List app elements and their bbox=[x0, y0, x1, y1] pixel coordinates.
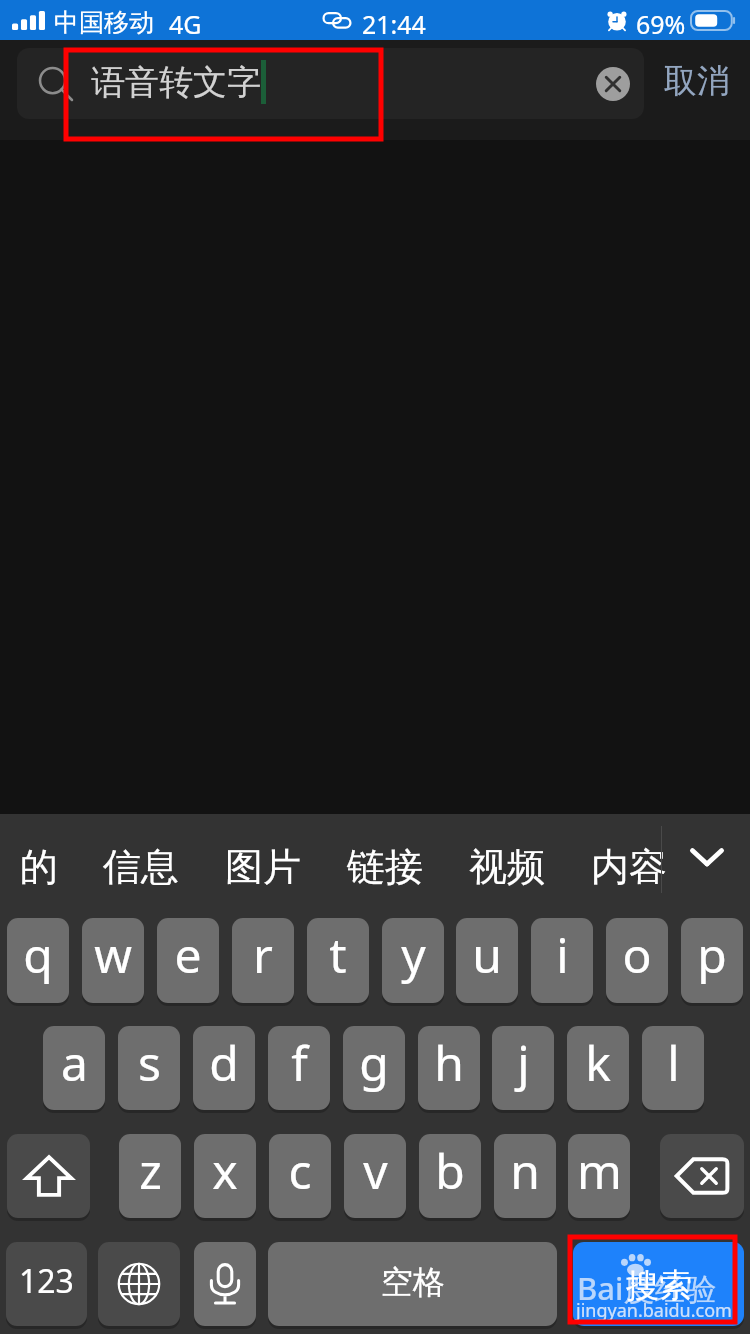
staticText: a bbox=[61, 1030, 88, 1095]
staticText: 语音转文字 bbox=[91, 61, 261, 104]
button[interactable]: l bbox=[642, 1026, 704, 1110]
button[interactable]: Shift bbox=[7, 1134, 90, 1218]
staticText: o bbox=[622, 922, 652, 987]
button[interactable]: c bbox=[269, 1134, 331, 1218]
button[interactable]: 的 bbox=[6, 825, 72, 909]
button[interactable]: 内容 bbox=[577, 825, 681, 909]
staticText: c bbox=[288, 1138, 312, 1203]
staticText: Bai度经验 bbox=[577, 1267, 717, 1309]
staticText: q bbox=[23, 922, 53, 987]
staticText: 信息 bbox=[103, 843, 179, 891]
staticText: i bbox=[556, 922, 569, 987]
button[interactable]: m bbox=[568, 1134, 630, 1218]
button[interactable]: f bbox=[268, 1026, 330, 1110]
button[interactable]: Hide keyboard bbox=[675, 825, 739, 889]
staticText: m bbox=[577, 1138, 622, 1203]
staticText: w bbox=[94, 922, 132, 987]
staticText: r bbox=[253, 922, 273, 987]
staticText: d bbox=[209, 1030, 239, 1095]
staticText: 取消 bbox=[664, 60, 730, 102]
button[interactable]: d bbox=[193, 1026, 255, 1110]
staticText: l bbox=[667, 1030, 680, 1095]
button[interactable]: p bbox=[681, 918, 743, 1003]
staticText: 图片 bbox=[225, 843, 301, 891]
button[interactable]: e bbox=[157, 918, 219, 1003]
button[interactable]: j bbox=[492, 1026, 554, 1110]
staticText: x bbox=[212, 1138, 238, 1203]
staticText: n bbox=[510, 1138, 540, 1203]
button[interactable]: b bbox=[419, 1134, 481, 1218]
staticText: z bbox=[139, 1138, 162, 1203]
staticText: 搜索 bbox=[626, 1265, 692, 1307]
button[interactable]: Backspace bbox=[660, 1134, 744, 1218]
staticText: 21:44 bbox=[362, 7, 426, 41]
staticText: 链接 bbox=[347, 843, 423, 891]
staticText: 69% bbox=[636, 7, 686, 41]
staticText: 的 bbox=[20, 843, 58, 891]
staticText: y bbox=[401, 922, 426, 987]
button[interactable]: g bbox=[343, 1026, 405, 1110]
button[interactable]: q bbox=[7, 918, 69, 1003]
button[interactable]: 取消 bbox=[658, 54, 736, 108]
staticText: t bbox=[329, 922, 347, 987]
button[interactable]: h bbox=[418, 1026, 480, 1110]
button[interactable]: o bbox=[606, 918, 668, 1003]
staticText: 空格 bbox=[381, 1262, 445, 1302]
staticText: b bbox=[435, 1138, 465, 1203]
staticText: 视频 bbox=[469, 843, 545, 891]
staticText: h bbox=[434, 1030, 464, 1095]
staticText: 4G bbox=[169, 7, 202, 41]
staticText: 123 bbox=[19, 1259, 74, 1303]
button[interactable]: k bbox=[567, 1026, 629, 1110]
button[interactable]: t bbox=[307, 918, 369, 1003]
staticText: 中国移动 bbox=[54, 7, 154, 38]
button[interactable]: 语音转文字 bbox=[17, 48, 644, 119]
button[interactable]: r bbox=[232, 918, 294, 1003]
button[interactable]: v bbox=[344, 1134, 406, 1218]
button[interactable]: Clear text bbox=[596, 67, 630, 101]
staticText: v bbox=[363, 1138, 388, 1203]
button[interactable]: Voice input bbox=[194, 1242, 256, 1326]
staticText: e bbox=[174, 922, 202, 987]
button[interactable]: u bbox=[456, 918, 518, 1003]
button[interactable]: 视频 bbox=[455, 825, 559, 909]
staticText: jingyan.baidu.com bbox=[576, 1298, 732, 1323]
button[interactable]: z bbox=[119, 1134, 181, 1218]
staticText: p bbox=[697, 922, 727, 987]
staticText: u bbox=[472, 922, 502, 987]
staticText: 内容 bbox=[591, 843, 667, 891]
button[interactable]: w bbox=[82, 918, 144, 1003]
button[interactable]: a bbox=[43, 1026, 105, 1110]
staticText: f bbox=[291, 1030, 308, 1095]
button[interactable]: 链接 bbox=[333, 825, 437, 909]
button[interactable]: s bbox=[118, 1026, 180, 1110]
button[interactable]: 图片 bbox=[211, 825, 315, 909]
button[interactable]: 信息 bbox=[89, 825, 193, 909]
button[interactable]: 空格 bbox=[268, 1242, 557, 1326]
button[interactable]: x bbox=[194, 1134, 256, 1218]
button[interactable]: i bbox=[531, 918, 593, 1003]
button[interactable]: n bbox=[494, 1134, 556, 1218]
button[interactable]: Switch input language bbox=[98, 1242, 180, 1326]
staticText: j bbox=[517, 1030, 530, 1095]
staticText: s bbox=[138, 1030, 161, 1095]
staticText: g bbox=[359, 1030, 389, 1095]
button[interactable]: y bbox=[382, 918, 444, 1003]
button[interactable]: 123 bbox=[6, 1242, 87, 1326]
button[interactable]: Bai度经验 bbox=[573, 1242, 744, 1326]
staticText: k bbox=[585, 1030, 611, 1095]
